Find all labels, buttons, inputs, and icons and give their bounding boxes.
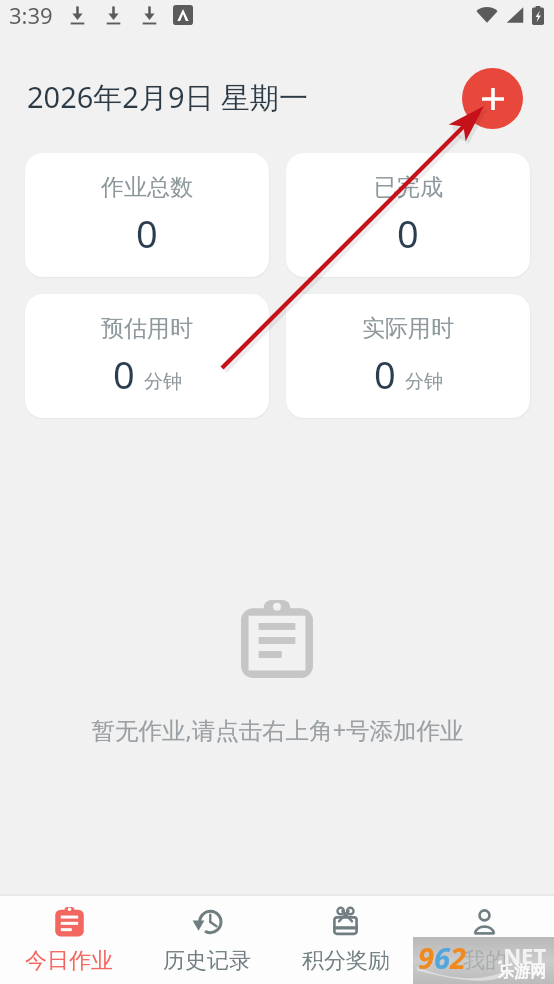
staticText: 预估用时 — [101, 314, 193, 343]
button[interactable]: 预估用时 — [25, 294, 269, 418]
staticText: 我的 — [463, 947, 507, 975]
button[interactable]: 历史记录 — [138, 896, 276, 984]
staticText: 实际用时 — [362, 314, 454, 343]
staticText: 0 — [397, 207, 419, 259]
staticText: 6 — [434, 938, 450, 977]
button[interactable]: 作业总数 — [25, 153, 269, 277]
button[interactable]: 积分奖励 — [276, 896, 415, 984]
button[interactable]: 已完成 — [286, 153, 530, 277]
staticText: 今日作业 — [25, 947, 113, 975]
staticText: .NET — [497, 940, 547, 970]
button[interactable]: 实际用时 — [286, 294, 530, 418]
staticText: 0 — [136, 207, 158, 259]
staticText: 分钟 — [405, 370, 443, 394]
staticText: 9 — [418, 938, 434, 977]
staticText: 作业总数 — [101, 173, 193, 202]
staticText: 乐游网 — [498, 962, 546, 982]
staticText: 积分奖励 — [302, 947, 390, 975]
staticText: 暂无作业,请点击右上角+号添加作业 — [91, 714, 464, 746]
button[interactable]: 我的 — [415, 896, 554, 984]
staticText: 已完成 — [374, 173, 443, 202]
button[interactable]: 今日作业 — [0, 896, 138, 984]
staticText: 3:39 — [9, 0, 53, 30]
staticText: 分钟 — [144, 370, 182, 394]
staticText: 2026年2月9日 星期一 — [27, 77, 309, 117]
button[interactable]: 添加作业 — [462, 68, 523, 129]
staticText: 0 — [113, 348, 135, 400]
staticText: 2 — [450, 938, 466, 977]
staticText: 0 — [374, 348, 396, 400]
staticText: 历史记录 — [163, 947, 251, 975]
